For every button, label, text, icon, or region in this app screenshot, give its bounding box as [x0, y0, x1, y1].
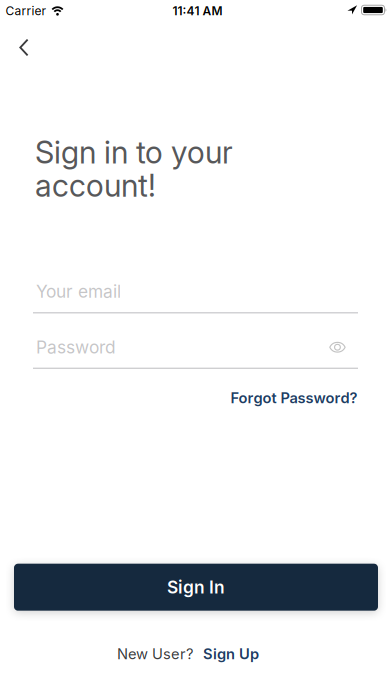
- staticText: Password: [36, 337, 116, 357]
- staticText: 11:41 AM: [172, 4, 222, 18]
- staticText: Carrier: [5, 4, 46, 18]
- button[interactable]: Forgot Password?: [230, 389, 357, 406]
- staticText: New User?: [117, 645, 193, 663]
- staticText: Sign in to your account!: [35, 134, 233, 204]
- staticText: Forgot Password?: [230, 389, 357, 406]
- staticText: Sign Up: [203, 645, 259, 663]
- staticText: Sign In: [167, 577, 225, 597]
- button[interactable]: [329, 342, 346, 353]
- button[interactable]: [0, 39, 43, 57]
- staticText: Your email: [36, 281, 121, 302]
- button[interactable]: Sign Up: [203, 645, 259, 663]
- button[interactable]: Sign In: [14, 564, 378, 611]
